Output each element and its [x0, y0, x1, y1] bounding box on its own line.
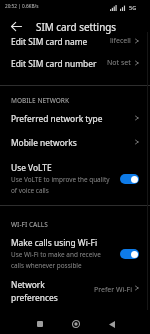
staticText: Use Wi-Fi to make and receive — [11, 250, 101, 259]
button[interactable]: Use VoLTE — [0, 160, 150, 194]
button[interactable]: Back — [102, 314, 122, 334]
staticText: 5G — [129, 4, 137, 11]
staticText: 20:52 | 0.6KB/s — [5, 3, 39, 9]
staticText: Network — [11, 279, 45, 290]
button[interactable]: Edit SIM card name — [0, 30, 150, 52]
staticText: lifecell — [110, 36, 131, 46]
staticText: Use VoLTE to improve the quality — [11, 175, 110, 184]
staticText: Prefer Wi-Fi — [94, 285, 133, 295]
staticText: calls whenever possible — [11, 261, 82, 270]
staticText: MOBILE NETWORK — [11, 96, 70, 105]
staticText: Edit SIM card name — [11, 36, 88, 47]
button[interactable]: Edit SIM card number — [0, 52, 150, 74]
button[interactable]: Recent apps — [30, 314, 50, 334]
button[interactable]: Toggle — [120, 249, 139, 259]
staticText: Edit SIM card number — [11, 58, 97, 69]
button[interactable]: Toggle — [120, 174, 139, 184]
staticText: Preferred network type — [11, 113, 103, 124]
staticText: Mobile networks — [11, 137, 77, 148]
button[interactable]: Home — [66, 314, 86, 334]
button[interactable]: Network — [0, 275, 150, 303]
staticText: Use VoLTE — [11, 162, 52, 173]
staticText: preferences — [11, 292, 58, 303]
staticText: Make calls using Wi-Fi — [11, 237, 98, 248]
staticText: SIM card settings — [36, 20, 117, 33]
staticText: WI-FI CALLS — [11, 220, 48, 229]
staticText: of voice calls — [11, 186, 49, 195]
button[interactable]: Preferred network type — [0, 107, 150, 129]
button[interactable]: Back — [6, 16, 26, 36]
button[interactable]: Mobile networks — [0, 131, 150, 153]
button[interactable]: Make calls using Wi-Fi — [0, 235, 150, 269]
staticText: Not set — [107, 58, 131, 68]
